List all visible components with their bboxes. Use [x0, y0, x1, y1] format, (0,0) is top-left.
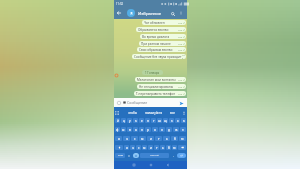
- button[interactable]: и: [147, 136, 154, 141]
- button[interactable]: я: [115, 136, 122, 141]
- button[interactable]: Emoji: [133, 153, 139, 158]
- staticText: и: [150, 137, 152, 141]
- staticText: у: [129, 119, 131, 123]
- staticText: 17:3: [178, 79, 183, 82]
- staticText: .: [173, 154, 174, 158]
- button[interactable]: г: [151, 118, 156, 123]
- button[interactable]: и: [148, 145, 153, 150]
- staticText: и: [150, 146, 152, 150]
- button[interactable]: ц: [121, 118, 126, 123]
- staticText: ь: [166, 137, 168, 141]
- button[interactable]: Home: [148, 162, 154, 168]
- button[interactable]: к: [133, 118, 138, 123]
- button[interactable]: Обрываются звонки: [136, 27, 186, 32]
- button[interactable]: ъ: [181, 118, 186, 123]
- button[interactable]: ж: [173, 127, 179, 132]
- button[interactable]: й: [115, 118, 120, 123]
- staticText: ъ: [183, 119, 185, 123]
- button[interactable]: Search: [169, 10, 176, 17]
- button[interactable]: .: [170, 153, 176, 158]
- button[interactable]: Back: [115, 9, 123, 17]
- button[interactable]: При разном начале: [139, 41, 186, 46]
- staticText: Мелатонин мои контакты: [137, 78, 176, 82]
- button[interactable]: Recents: [131, 162, 137, 168]
- staticText: 17:3: [178, 86, 183, 89]
- button[interactable]: ы: [121, 127, 126, 132]
- staticText: ?123: [118, 154, 123, 157]
- staticText: пожалуйста: [145, 111, 163, 115]
- button[interactable]: з: [169, 118, 174, 123]
- button[interactable]: Т-перенаправить телефон: [134, 91, 186, 96]
- button[interactable]: щ: [163, 118, 168, 123]
- button[interactable]: ч: [123, 136, 130, 141]
- button[interactable]: б: [171, 136, 178, 141]
- button[interactable]: Во время диалога: [140, 34, 186, 39]
- button[interactable]: м: [139, 136, 146, 141]
- button[interactable]: о: [152, 127, 158, 132]
- button[interactable]: ь: [163, 136, 170, 141]
- staticText: н: [147, 119, 149, 123]
- button[interactable]: п: [139, 127, 144, 132]
- button[interactable]: Emoji: [116, 100, 121, 105]
- staticText: ч: [132, 146, 134, 150]
- button[interactable]: с: [131, 136, 138, 141]
- button[interactable]: ю: [179, 136, 186, 141]
- staticText: е: [141, 119, 143, 123]
- staticText: ю: [173, 146, 176, 150]
- button[interactable]: More options: [178, 10, 184, 16]
- button[interactable]: Не специализированы: [137, 84, 186, 89]
- button[interactable]: б: [166, 145, 171, 150]
- button[interactable]: у: [127, 118, 132, 123]
- staticText: э: [182, 128, 184, 132]
- button[interactable]: Backspace: [178, 145, 186, 150]
- button[interactable]: е: [139, 118, 144, 123]
- staticText: 17:3: [178, 49, 183, 52]
- button[interactable]: т: [154, 145, 159, 150]
- button[interactable]: р: [145, 127, 151, 132]
- button[interactable]: с: [136, 145, 141, 150]
- button[interactable]: м: [142, 145, 147, 150]
- button[interactable]: Сообщение без звука приходит: [132, 54, 186, 59]
- staticText: ф: [116, 128, 119, 132]
- staticText: Русский: [150, 154, 159, 157]
- button[interactable]: Back: [165, 162, 171, 168]
- button[interactable]: ф: [115, 127, 120, 132]
- staticText: Сообщение: [127, 100, 148, 105]
- staticText: ю: [181, 137, 184, 141]
- button[interactable]: ?123: [115, 153, 125, 158]
- staticText: Не специализированы: [139, 85, 174, 89]
- button[interactable]: ь: [160, 145, 165, 150]
- button[interactable]: д: [166, 127, 172, 132]
- button[interactable]: ш: [157, 118, 162, 123]
- button[interactable]: ю: [172, 145, 177, 150]
- staticText: с: [138, 146, 140, 150]
- button[interactable]: в: [127, 127, 132, 132]
- button[interactable]: Свои обрывам звонки: [137, 47, 186, 52]
- staticText: ж: [175, 128, 178, 132]
- staticText: 17:3: [178, 22, 183, 25]
- staticText: п: [141, 128, 143, 132]
- button[interactable]: Send: [177, 99, 185, 107]
- staticText: я: [118, 137, 120, 141]
- staticText: а: [135, 128, 137, 132]
- button[interactable]: л: [159, 127, 165, 132]
- button[interactable]: а: [133, 127, 138, 132]
- staticText: Во время диалога: [142, 35, 170, 39]
- button[interactable]: Мелатонин мои контакты: [135, 77, 186, 82]
- button[interactable]: Чат обновлен: [142, 20, 186, 25]
- button[interactable]: Русский: [140, 153, 169, 158]
- button[interactable]: ч: [130, 145, 135, 150]
- staticText: т: [156, 146, 158, 150]
- button[interactable]: т: [155, 136, 162, 141]
- button[interactable]: Shift: [115, 145, 123, 150]
- staticText: в: [129, 128, 131, 132]
- staticText: Сообщение без звука приходит: [134, 55, 182, 59]
- staticText: ь: [162, 146, 164, 150]
- button[interactable]: Language: [126, 153, 132, 158]
- button[interactable]: Enter: [177, 153, 186, 158]
- button[interactable]: я: [124, 145, 129, 150]
- button[interactable]: э: [180, 127, 186, 132]
- staticText: все: [170, 111, 175, 115]
- button[interactable]: х: [175, 118, 180, 123]
- button[interactable]: н: [145, 118, 150, 123]
